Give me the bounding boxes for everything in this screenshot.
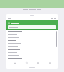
button[interactable] [6,36,58,39]
button[interactable] [6,30,58,33]
button[interactable]: Favorites [35,60,40,65]
button[interactable] [6,48,58,51]
button[interactable]: Home [12,60,17,65]
button[interactable]: Profile [47,60,52,65]
button[interactable] [6,33,58,36]
button[interactable] [6,57,58,60]
button[interactable] [6,42,58,45]
button[interactable] [6,45,58,48]
other: Menu [8,22,10,24]
button[interactable]: Search [24,60,29,65]
button[interactable] [6,54,58,57]
button[interactable] [6,39,58,42]
button[interactable] [6,51,58,54]
button[interactable]: Menu [6,20,58,29]
button[interactable] [8,25,56,29]
